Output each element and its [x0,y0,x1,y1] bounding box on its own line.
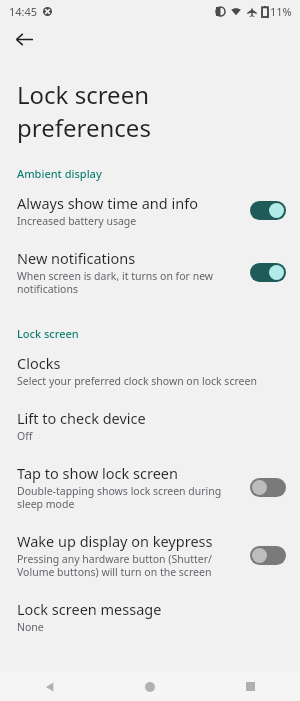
button[interactable]: Back [0,672,100,701]
button[interactable]: Always show time and info [0,183,300,238]
staticText: When screen is dark, it turns on for new… [17,269,240,296]
button[interactable]: Clocks [0,343,300,398]
button[interactable]: Tap to show lock screen [0,453,300,521]
staticText: None [17,620,44,634]
button[interactable]: New notifications [0,238,300,306]
staticText: Ambient display [17,166,102,181]
staticText: Tap to show lock screen [17,463,178,483]
button[interactable]: Lift to check device [0,398,300,453]
staticText: 11% [270,4,292,19]
button[interactable]: Off [250,546,286,565]
staticText: Lock screen [17,326,79,341]
staticText: Increased battery usage [17,214,137,228]
staticText: Off [17,429,33,443]
button[interactable]: On [250,201,286,220]
staticText: Clocks [17,353,61,373]
button[interactable]: Off [250,478,286,497]
staticText: Wake up display on keypress [17,531,213,551]
staticText: Lock screen message [17,599,162,619]
button[interactable]: On [250,263,286,282]
button[interactable]: Wake up display on keypress [0,521,300,589]
staticText: preferences [17,111,151,144]
button[interactable]: Recent apps [200,672,300,701]
button[interactable]: Lock screen message [0,589,300,644]
button[interactable]: Home [100,672,200,701]
staticText: Pressing any hardware button (Shutter/Vo… [17,552,240,579]
staticText: Lift to check device [17,408,146,428]
button[interactable]: Back [8,23,40,55]
staticText: 14:45 [9,4,38,19]
staticText: New notifications [17,248,136,268]
staticText: Lock screen [17,78,150,111]
staticText: Always show time and info [17,193,198,213]
staticText: Double-tapping shows lock screen during … [17,484,240,511]
staticText: Select your preferred clock shown on loc… [17,374,257,388]
